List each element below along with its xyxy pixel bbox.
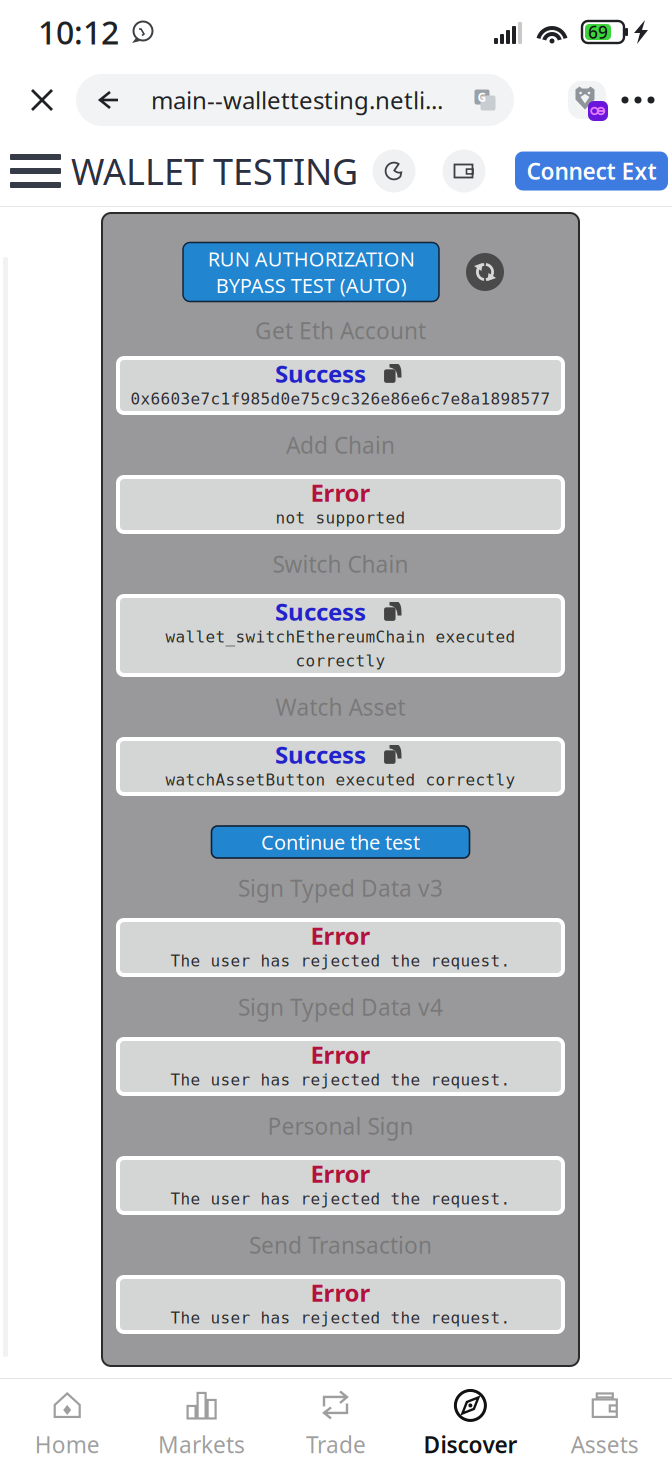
staticText: 10:12 [38,11,119,53]
staticText: The user has rejected the request. [170,952,510,970]
staticText: Sign Typed Data v3 [238,873,443,903]
staticText: watchAssetButton executed correctly [165,771,515,789]
staticText: 0x6603e7c1f985d0e75c9c326e86e6c7e8a18985… [130,390,550,408]
staticText: Continue the test [261,829,420,855]
staticText: Error [310,477,370,508]
staticText: Error [310,1039,370,1070]
staticText: correctly [295,652,385,670]
button[interactable]: Home [0,1379,134,1470]
staticText: Sign Typed Data v4 [238,992,443,1022]
staticText: Home [35,1429,100,1459]
staticText: Error [310,1277,370,1308]
staticText: Markets [158,1429,245,1459]
staticText: Trade [306,1429,366,1459]
button[interactable]: Brave Shields [564,77,610,123]
staticText: Error [310,1158,370,1189]
staticText: Add Chain [286,430,395,460]
button[interactable]: Menu [0,147,71,195]
button[interactable]: Toggle dark mode [373,150,415,192]
staticText: The user has rejected the request. [170,1190,510,1208]
button[interactable]: Connect Ext [515,151,668,190]
staticText: wallet_switchEthereumChain executed [165,628,515,646]
staticText: Connect Ext [526,156,656,186]
button[interactable]: Trade [269,1379,403,1470]
staticText: The user has rejected the request. [170,1309,510,1327]
button[interactable]: Refresh [463,250,507,294]
staticText: Error [310,920,370,951]
button[interactable]: Markets [134,1379,269,1470]
staticText: Success [275,596,366,627]
staticText: WALLET TESTING [71,147,358,195]
staticText: Success [275,739,366,770]
staticText: main--wallettesting.netli... [151,84,443,116]
staticText: 69 [588,20,608,43]
staticText: Switch Chain [272,549,408,579]
staticText: Personal Sign [267,1111,413,1141]
staticText: Success [275,358,366,389]
button[interactable]: Discover [403,1379,538,1470]
staticText: Watch Asset [275,692,405,722]
button[interactable]: More options [614,76,662,124]
button[interactable]: RUN AUTHORIZATION BYPASS TEST (AUTO) [183,242,439,301]
button[interactable]: Wallet [443,150,485,192]
staticText: Assets [571,1429,639,1459]
staticText: The user has rejected the request. [170,1071,510,1089]
button[interactable]: Continue the test [211,826,469,858]
staticText: not supported [275,509,405,527]
button[interactable]: Assets [538,1379,672,1470]
button[interactable]: Close tab [14,72,70,128]
staticText: RUN AUTHORIZATION BYPASS TEST (AUTO) [207,245,414,298]
staticText: Send Transaction [249,1230,432,1260]
staticText: G [477,89,486,105]
staticText: Discover [423,1429,517,1459]
staticText: Get Eth Account [255,315,426,345]
